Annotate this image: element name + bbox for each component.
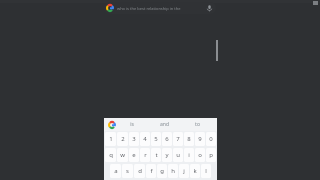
staticText: f: [150, 167, 153, 175]
staticText: e: [132, 151, 136, 159]
button[interactable]: 6: [162, 132, 172, 146]
button[interactable]: d: [134, 164, 145, 178]
button[interactable]: Google: [107, 120, 116, 129]
button[interactable]: 3: [129, 132, 139, 146]
button[interactable]: h: [168, 164, 178, 178]
staticText: k: [193, 167, 197, 175]
staticText: 8: [187, 135, 191, 143]
button[interactable]: l: [201, 164, 211, 178]
button[interactable]: Voice search: [205, 4, 214, 13]
button[interactable]: y: [162, 148, 172, 162]
staticText: a: [114, 167, 118, 175]
staticText: g: [160, 167, 164, 175]
button[interactable]: a: [110, 164, 121, 178]
button[interactable]: w: [117, 148, 128, 162]
button[interactable]: 9: [195, 132, 205, 146]
button[interactable]: p: [206, 148, 216, 162]
staticText: h: [171, 167, 175, 175]
staticText: 6: [165, 135, 169, 143]
staticText: to: [195, 121, 200, 128]
button[interactable]: q: [105, 148, 116, 162]
staticText: 9: [198, 135, 202, 143]
button[interactable]: i: [184, 148, 194, 162]
staticText: p: [209, 151, 213, 159]
button[interactable]: j: [179, 164, 189, 178]
button[interactable]: k: [190, 164, 200, 178]
button[interactable]: 2: [117, 132, 128, 146]
button[interactable]: 8: [184, 132, 194, 146]
staticText: 0: [209, 135, 213, 143]
button[interactable]: is: [116, 118, 148, 131]
button[interactable]: g: [157, 164, 167, 178]
staticText: 7: [176, 135, 180, 143]
staticText: 2: [121, 135, 125, 143]
button[interactable]: and: [148, 118, 181, 131]
button[interactable]: f: [146, 164, 156, 178]
button[interactable]: t: [151, 148, 161, 162]
staticText: t: [155, 151, 158, 159]
staticText: 5: [154, 135, 158, 143]
button[interactable]: r: [140, 148, 150, 162]
staticText: w: [120, 151, 125, 159]
staticText: y: [165, 151, 169, 159]
button[interactable]: e: [129, 148, 139, 162]
staticText: is: [130, 121, 134, 128]
staticText: i: [188, 151, 190, 159]
button[interactable]: 7: [173, 132, 183, 146]
button[interactable]: 4: [140, 132, 150, 146]
staticText: r: [144, 151, 147, 159]
button[interactable]: 5: [151, 132, 161, 146]
staticText: o: [198, 151, 202, 159]
button[interactable]: o: [195, 148, 205, 162]
staticText: 1: [109, 135, 113, 143]
staticText: q: [109, 151, 113, 159]
staticText: and: [160, 121, 169, 128]
staticText: 3: [132, 135, 136, 143]
staticText: s: [126, 167, 129, 175]
button[interactable]: who is the best relationship in the: [104, 2, 216, 14]
button[interactable]: 0: [206, 132, 216, 146]
staticText: l: [205, 167, 207, 175]
button[interactable]: s: [122, 164, 133, 178]
button[interactable]: u: [173, 148, 183, 162]
staticText: who is the best relationship in the: [117, 6, 203, 11]
button[interactable]: to: [181, 118, 214, 131]
staticText: 4: [143, 135, 147, 143]
staticText: d: [138, 167, 142, 175]
staticText: j: [183, 167, 185, 175]
staticText: u: [176, 151, 180, 159]
button[interactable]: 1: [105, 132, 116, 146]
